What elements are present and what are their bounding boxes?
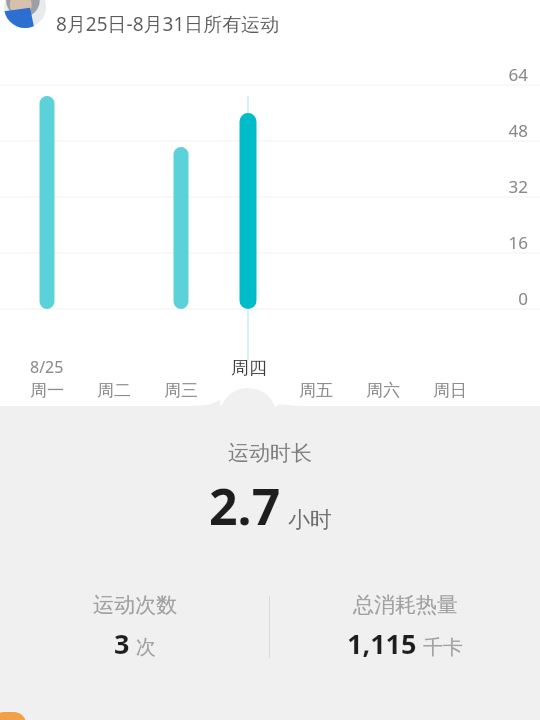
- staticText: 3: [114, 625, 130, 662]
- staticText: 1,115: [347, 625, 417, 662]
- button[interactable]: 总消耗热量: [270, 592, 540, 662]
- staticText: 周二: [97, 380, 131, 401]
- staticText: 千卡: [423, 635, 463, 660]
- staticText: 16: [0, 231, 528, 254]
- button[interactable]: 周五: [292, 377, 340, 403]
- staticText: 周日: [433, 380, 467, 401]
- staticText: 周六: [366, 380, 400, 401]
- other: Profile avatar: [4, 0, 46, 28]
- button[interactable]: 周四: [225, 355, 273, 381]
- staticText: 运动次数: [93, 592, 177, 618]
- staticText: 8月25日-8月31日所有运动: [56, 11, 280, 37]
- staticText: 次: [136, 635, 156, 660]
- staticText: 周三: [164, 380, 198, 401]
- staticText: 64: [0, 63, 528, 86]
- button[interactable]: 周三: [157, 377, 205, 403]
- button[interactable]: Shortcut: [0, 712, 26, 720]
- staticText: 周一: [30, 380, 64, 401]
- staticText: 周五: [299, 380, 333, 401]
- staticText: 2.7: [209, 472, 281, 540]
- staticText: 小时: [288, 506, 332, 534]
- staticText: 总消耗热量: [353, 592, 458, 618]
- staticText: 周四: [231, 357, 267, 380]
- button[interactable]: 周日: [426, 377, 474, 403]
- staticText: 48: [0, 119, 528, 142]
- button[interactable]: Profile avatar: [0, 0, 540, 48]
- button[interactable]: 运动次数: [0, 592, 269, 662]
- staticText: 32: [0, 175, 528, 198]
- staticText: 8/25: [30, 356, 64, 378]
- staticText: 0: [0, 287, 528, 310]
- button[interactable]: 周六: [359, 377, 407, 403]
- staticText: 运动时长: [228, 440, 312, 466]
- button[interactable]: 周二: [90, 377, 138, 403]
- button[interactable]: 周一: [23, 377, 71, 403]
